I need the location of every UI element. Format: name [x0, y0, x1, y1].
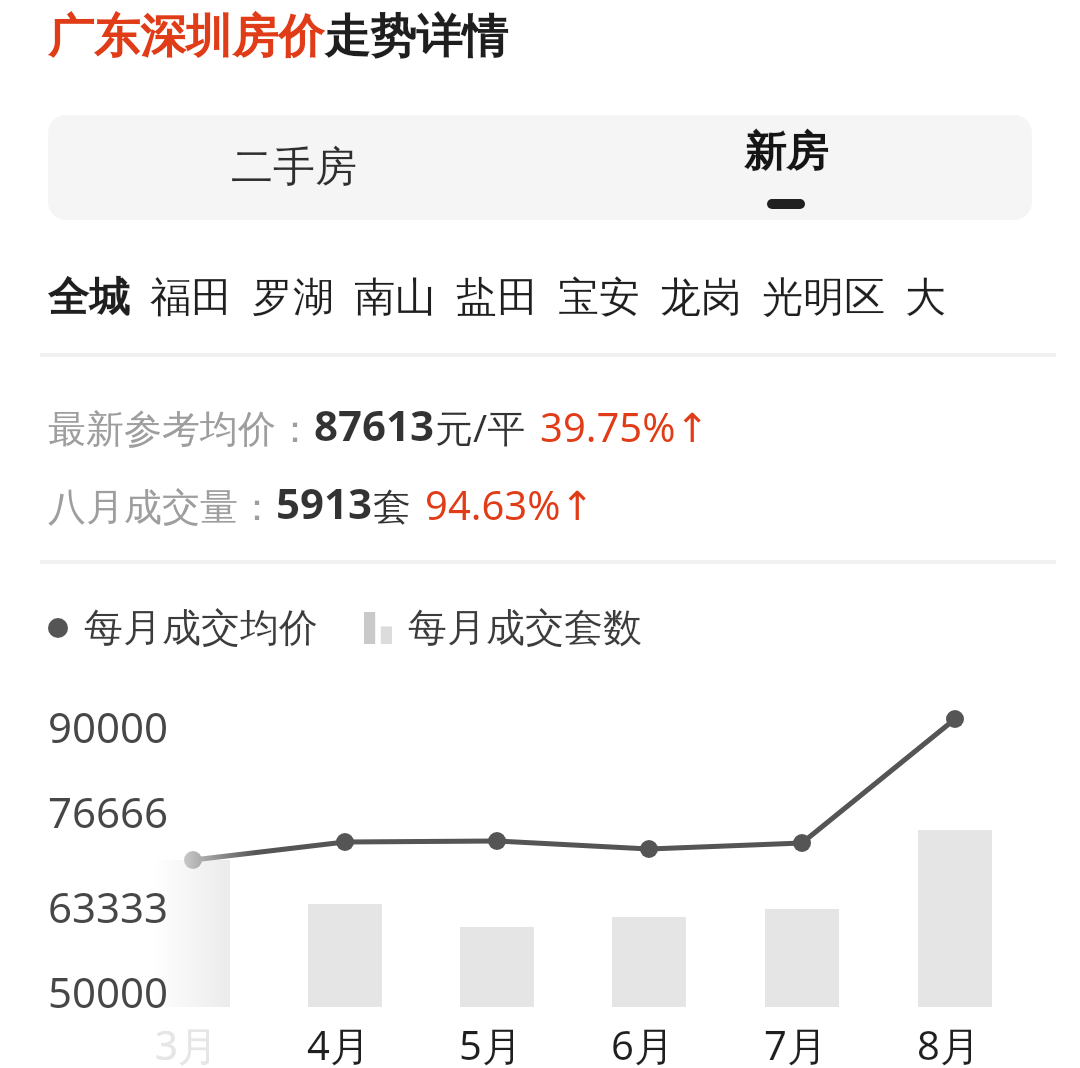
staticText: 7月	[764, 1017, 827, 1068]
staticText: 走势详情	[324, 8, 508, 66]
staticText: 罗湖	[252, 272, 334, 324]
button[interactable]: Monthly transaction count series	[364, 603, 642, 652]
staticText: 福田	[150, 272, 232, 324]
staticText: 全城	[48, 272, 130, 324]
staticText: 套	[373, 483, 411, 531]
button[interactable]: Monthly average price series	[48, 603, 318, 652]
button[interactable]: 新房	[540, 115, 1032, 220]
button[interactable]: 南山	[354, 272, 456, 324]
staticText: 6月	[611, 1017, 674, 1068]
staticText: 50000	[48, 963, 169, 1020]
staticText: 广东深圳房价	[48, 8, 324, 66]
staticText: 每月成交套数	[408, 603, 642, 652]
staticText: 每月成交均价	[84, 603, 318, 652]
staticText: 宝安	[558, 272, 640, 324]
staticText: 八月成交量：	[48, 483, 276, 531]
staticText: 90000	[48, 698, 169, 755]
staticText: 龙岗	[660, 272, 742, 324]
staticText: 新房	[744, 126, 828, 179]
button[interactable]: 大	[905, 272, 966, 324]
button[interactable]: 福田	[150, 272, 252, 324]
staticText: 盐田	[456, 272, 538, 324]
staticText: 63333	[48, 878, 169, 935]
staticText: 南山	[354, 272, 436, 324]
button[interactable]: 龙岗	[660, 272, 762, 324]
button[interactable]: 二手房	[48, 115, 540, 220]
staticText: 87613	[314, 396, 435, 453]
staticText: 5月	[459, 1017, 522, 1068]
staticText: 二手房	[231, 141, 357, 194]
staticText: 3月	[155, 1017, 218, 1068]
staticText: 元/平	[435, 401, 526, 453]
staticText: 94.63%↑	[425, 477, 594, 531]
button[interactable]: 光明区	[762, 272, 905, 324]
staticText: 光明区	[762, 272, 885, 324]
staticText: 4月	[307, 1017, 370, 1068]
staticText: 5913	[276, 474, 373, 531]
button[interactable]: 宝安	[558, 272, 660, 324]
staticText: 39.75%↑	[540, 399, 709, 453]
staticText: 8月	[917, 1017, 980, 1068]
staticText: 最新参考均价：	[48, 405, 314, 453]
button[interactable]: 全城	[48, 272, 150, 324]
staticText: 76666	[48, 783, 169, 840]
button[interactable]: 盐田	[456, 272, 558, 324]
staticText: 大	[905, 272, 946, 324]
button[interactable]: 罗湖	[252, 272, 354, 324]
